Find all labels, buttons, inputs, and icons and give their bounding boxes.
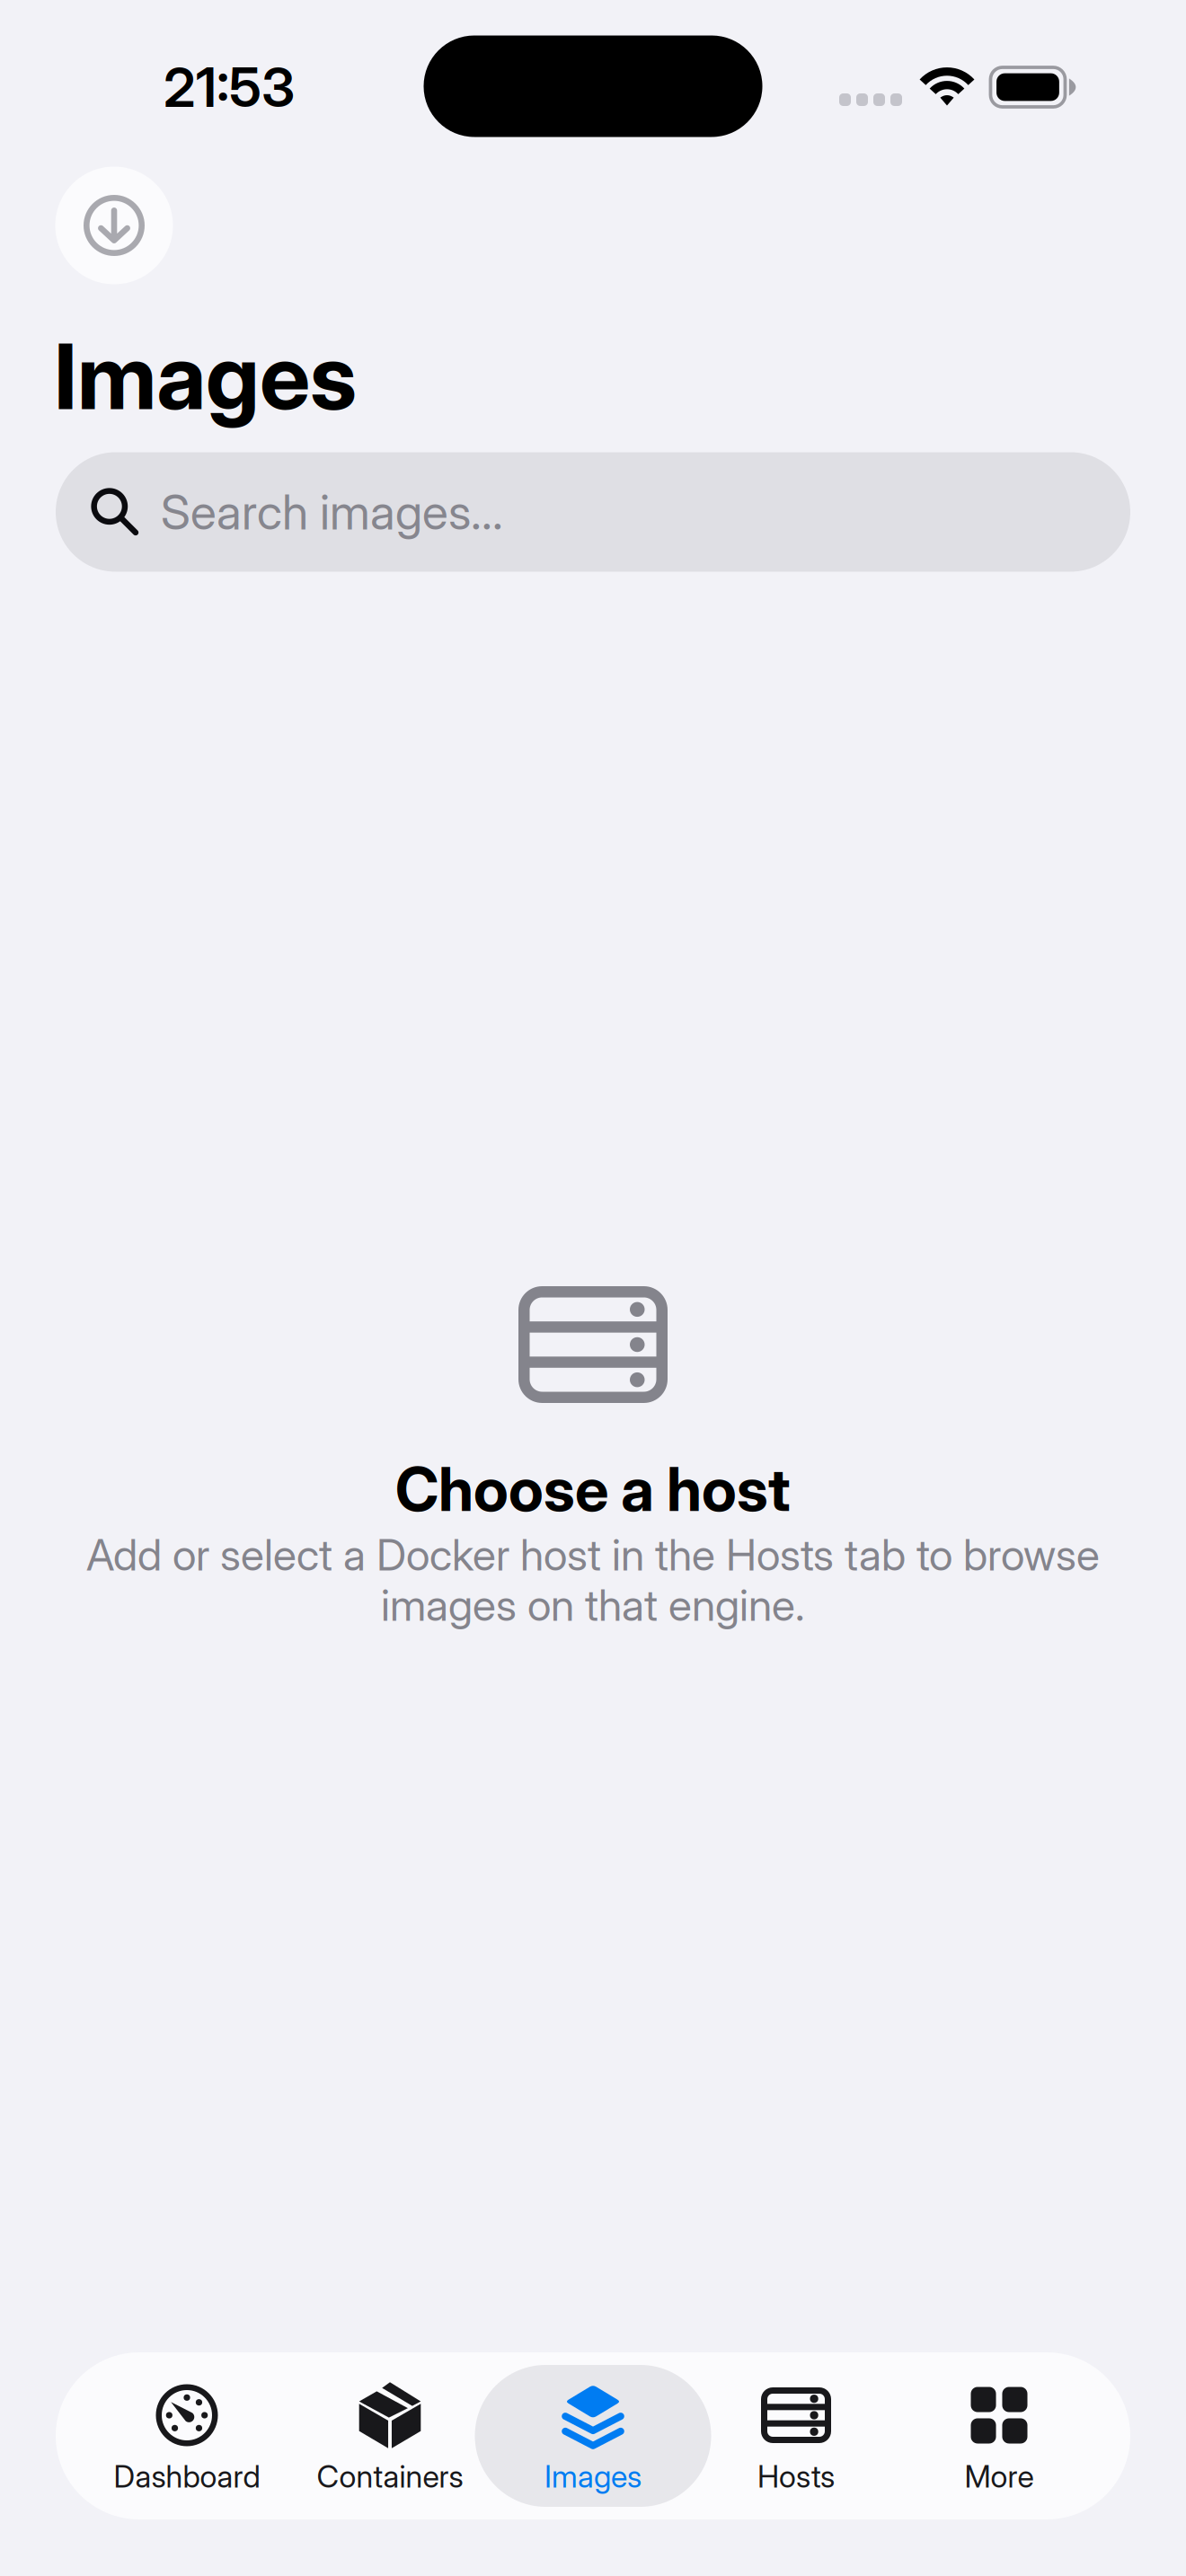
staticText: More	[965, 2458, 1034, 2495]
staticText: Add or select a Docker host in the Hosts…	[86, 1529, 1100, 1581]
button[interactable]: Images	[491, 2352, 695, 2519]
staticText: Dashboard	[114, 2458, 260, 2495]
staticText: Search images...	[161, 483, 503, 541]
button[interactable]: Pull image	[55, 167, 173, 284]
staticText: images on that engine.	[381, 1579, 805, 1631]
button[interactable]: Hosts	[695, 2352, 898, 2519]
staticText: Images	[544, 2458, 642, 2495]
staticText: Containers	[317, 2458, 463, 2495]
button[interactable]: Search images...	[56, 452, 1130, 572]
staticText: Hosts	[757, 2458, 835, 2495]
button[interactable]: Dashboard	[85, 2352, 288, 2519]
button[interactable]: More	[898, 2352, 1101, 2519]
staticText: 21:53	[164, 54, 295, 120]
button[interactable]: Containers	[288, 2352, 491, 2519]
staticText: Choose a host	[395, 1453, 791, 1525]
staticText: Images	[54, 322, 357, 431]
